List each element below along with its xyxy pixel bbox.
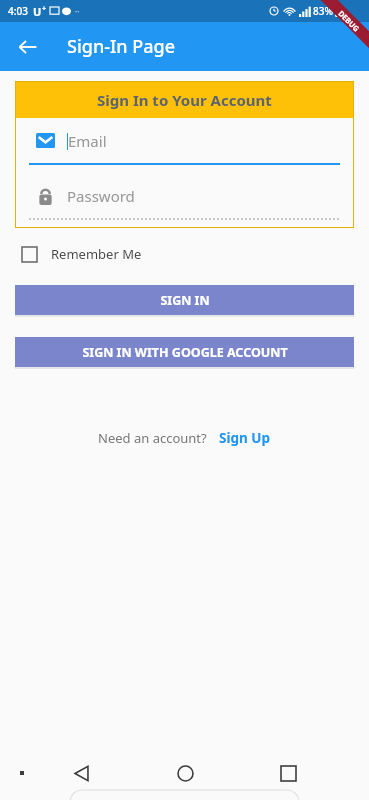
button[interactable]: Home: [163, 751, 207, 795]
staticText: 83%: [313, 4, 333, 18]
staticText: Password: [67, 186, 135, 206]
button[interactable]: Password: [29, 173, 340, 228]
button[interactable]: SIGN IN: [15, 285, 354, 315]
staticText: ··: [75, 6, 80, 17]
staticText: SIGN IN: [160, 292, 210, 309]
staticText: Sign Up: [219, 429, 271, 447]
staticText: Sign In to Your Account: [97, 90, 272, 110]
staticText: +: [42, 4, 47, 14]
staticText: 4:03: [8, 4, 28, 18]
staticText: Email: [68, 131, 107, 151]
staticText: Need an account?: [98, 429, 207, 447]
button[interactable]: Back: [8, 27, 48, 67]
staticText: Sign-In Page: [67, 34, 176, 59]
button[interactable]: Email: [29, 118, 340, 173]
staticText: U: [33, 4, 42, 19]
staticText: DEBUG: [336, 8, 362, 34]
staticText: SIGN IN WITH GOOGLE ACCOUNT: [82, 344, 288, 361]
button[interactable]: Sign Up: [219, 429, 271, 447]
button[interactable]: Back: [59, 751, 103, 795]
button[interactable]: Remember Me: [22, 239, 142, 269]
staticText: Remember Me: [51, 245, 142, 263]
button[interactable]: Recent apps: [266, 751, 310, 795]
button[interactable]: SIGN IN WITH GOOGLE ACCOUNT: [15, 337, 354, 367]
